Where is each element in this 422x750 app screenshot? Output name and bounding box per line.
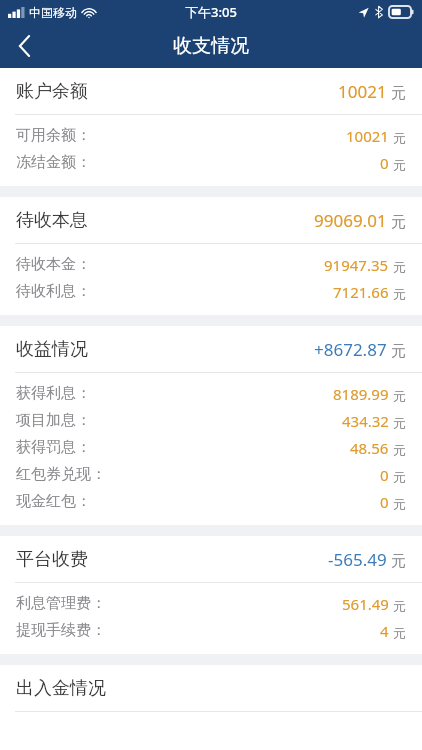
staticText: 提现手续费： [16, 621, 106, 640]
staticText: 中国移动 [29, 5, 77, 20]
staticText: 待收本息 [16, 209, 88, 232]
staticText: 元 [391, 84, 406, 103]
staticText: 8189.99 [333, 384, 389, 404]
staticText: 0 [380, 492, 389, 512]
staticText: 元 [393, 469, 406, 485]
staticText: 4 [380, 621, 389, 641]
staticText: 元 [391, 342, 406, 361]
staticText: 现金红包： [16, 492, 91, 511]
button[interactable]: 出入金情况 [0, 665, 422, 711]
staticText: 待收本金： [16, 255, 91, 274]
staticText: 元 [393, 496, 406, 512]
staticText: 冻结金额： [16, 153, 91, 172]
staticText: 0 [380, 153, 389, 173]
staticText: 收益情况 [16, 338, 88, 361]
staticText: 元 [393, 415, 406, 431]
staticText: 7121.66 [333, 282, 389, 302]
staticText: 0 [380, 465, 389, 485]
staticText: 元 [393, 157, 406, 173]
button[interactable]: 收益情况 [0, 326, 422, 372]
staticText: 10021 [346, 126, 389, 146]
staticText: 48.56 [350, 438, 389, 458]
staticText: 利息管理费： [16, 594, 106, 613]
staticText: 元 [393, 286, 406, 302]
staticText: 待收利息： [16, 282, 91, 301]
staticText: +8672.87 [314, 338, 387, 361]
staticText: 收支情况 [173, 34, 249, 58]
staticText: 红包券兑现： [16, 465, 106, 484]
staticText: 561.49 [342, 594, 389, 614]
staticText: 项目加息： [16, 411, 91, 430]
staticText: 元 [393, 598, 406, 614]
button[interactable]: 返回 [0, 24, 48, 68]
button[interactable]: 待收本息 [0, 197, 422, 243]
staticText: 出入金情况 [16, 677, 106, 700]
button[interactable]: 平台收费 [0, 536, 422, 582]
staticText: 获得利息： [16, 384, 91, 403]
staticText: 99069.01 [314, 209, 387, 232]
staticText: 平台收费 [16, 548, 88, 571]
staticText: 91947.35 [324, 255, 389, 275]
staticText: 账户余额 [16, 80, 88, 103]
staticText: 434.32 [342, 411, 389, 431]
staticText: 元 [393, 259, 406, 275]
staticText: 获得罚息： [16, 438, 91, 457]
staticText: 元 [391, 213, 406, 232]
staticText: -565.49 [328, 548, 387, 571]
staticText: 可用余额： [16, 126, 91, 145]
staticText: 下午3:05 [185, 3, 237, 21]
staticText: 10021 [338, 80, 387, 103]
staticText: 元 [393, 130, 406, 146]
staticText: 元 [393, 625, 406, 641]
staticText: 元 [391, 552, 406, 571]
staticText: 元 [393, 442, 406, 458]
button[interactable]: 账户余额 [0, 68, 422, 114]
staticText: 元 [393, 388, 406, 404]
